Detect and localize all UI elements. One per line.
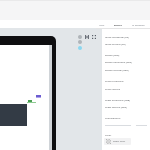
staticText: Before bbox=[114, 23, 122, 26]
staticText: Move vertical (px) bbox=[105, 42, 126, 45]
staticText: Color bbox=[105, 133, 112, 136]
button[interactable]: Fit to screen bbox=[92, 35, 96, 39]
button[interactable]: After bbox=[94, 20, 110, 28]
staticText: Move horizontal (px) bbox=[105, 35, 129, 38]
button[interactable]: Before bbox=[110, 20, 126, 28]
staticText: Rotate vertical (deg) bbox=[105, 68, 129, 71]
staticText: Rotate horizontal (deg) bbox=[105, 60, 132, 63]
staticText: Rotate (deg) bbox=[105, 53, 120, 56]
staticText: Select Color bbox=[113, 140, 126, 143]
staticText: Skew horizontal (deg) bbox=[105, 98, 131, 101]
staticText: Scale vertical bbox=[105, 87, 121, 90]
button[interactable]: Select Color bbox=[104, 138, 131, 145]
staticText: In Between bbox=[132, 23, 145, 26]
button[interactable]: Distribute horizontally bbox=[85, 35, 89, 39]
staticText: Transparency bbox=[105, 116, 121, 119]
button[interactable]: Handle middle bbox=[78, 40, 82, 44]
staticText: Skew vertical (deg) bbox=[105, 105, 127, 108]
staticText: Scale horizontal bbox=[105, 79, 124, 82]
button[interactable]: Handle top bbox=[78, 35, 82, 39]
staticText: After bbox=[99, 23, 105, 26]
button[interactable]: In Between bbox=[126, 20, 150, 28]
button[interactable]: Handle selected bbox=[78, 46, 82, 50]
